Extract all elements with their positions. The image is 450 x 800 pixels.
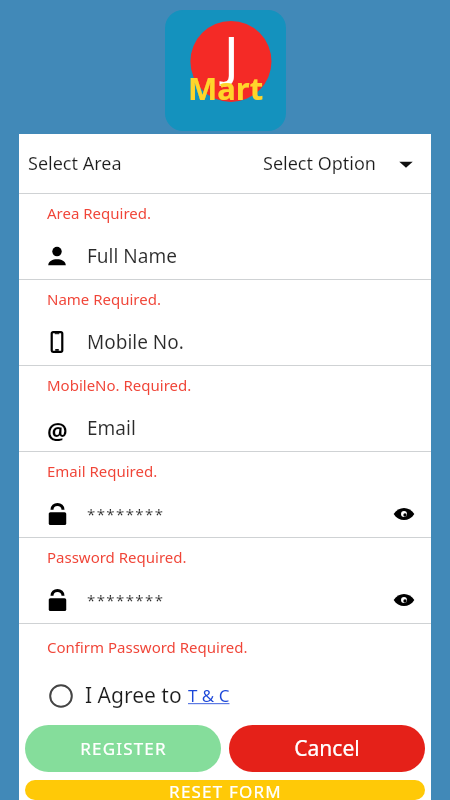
staticText: Password Required. — [47, 547, 187, 567]
button[interactable]: Select Area — [19, 134, 431, 193]
staticText: Confirm Password Required. — [47, 637, 248, 657]
staticText: ******** — [87, 504, 165, 524]
staticText: Select Option — [263, 151, 376, 176]
staticText: Email Required. — [47, 461, 158, 481]
staticText: ******** — [87, 590, 165, 610]
button[interactable]: RESET FORM — [25, 780, 425, 800]
staticText: J — [224, 18, 239, 92]
button[interactable]: REGISTER — [25, 725, 221, 772]
button[interactable]: Email Required. — [19, 452, 431, 537]
button[interactable]: J — [165, 10, 286, 131]
staticText: RESET FORM — [169, 780, 282, 800]
staticText: Mobile No. — [87, 329, 184, 355]
staticText: MobileNo. Required. — [47, 375, 192, 395]
button[interactable]: Password Required. — [19, 538, 431, 623]
staticText: @ — [47, 415, 68, 441]
button[interactable]: Name Required. — [19, 280, 431, 365]
staticText: Full Name — [87, 243, 177, 269]
button[interactable]: Show password — [387, 497, 421, 531]
staticText: Select Area — [28, 151, 122, 176]
button[interactable]: T & C — [188, 684, 230, 707]
staticText: REGISTER — [80, 737, 167, 760]
button[interactable]: Show password — [387, 583, 421, 617]
button[interactable]: MobileNo. Required. — [19, 366, 431, 451]
staticText: Email — [87, 415, 136, 441]
staticText: Area Required. — [47, 203, 152, 223]
staticText: Name Required. — [47, 289, 161, 309]
button[interactable]: I Agree to — [49, 681, 188, 710]
staticText: I Agree to — [85, 681, 188, 710]
button[interactable]: Cancel — [229, 725, 425, 772]
staticText: Mart — [188, 67, 264, 109]
button[interactable]: Area Required. — [19, 194, 431, 279]
staticText: Cancel — [294, 734, 360, 763]
